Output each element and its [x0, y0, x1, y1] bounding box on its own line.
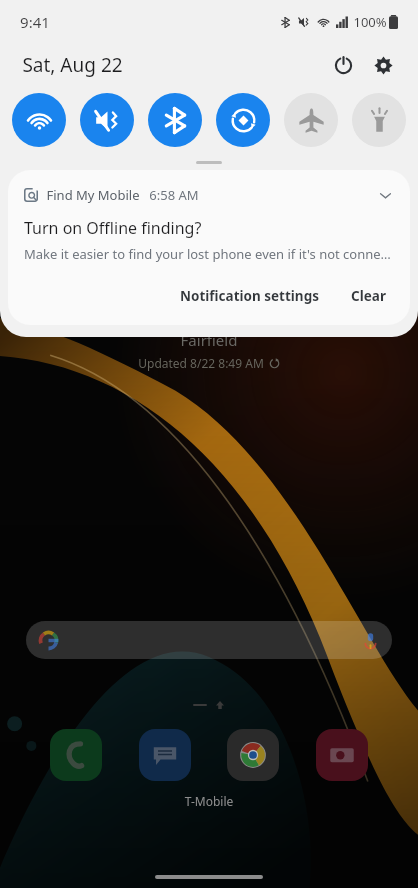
button[interactable]: App	[139, 729, 191, 781]
button[interactable]	[26, 621, 392, 659]
staticText: 100%	[353, 13, 387, 31]
staticText: Notification settings	[180, 287, 319, 305]
staticText: Sat, Aug 22	[22, 52, 123, 78]
staticText: 6:58 AM	[149, 186, 199, 204]
button[interactable]: Bluetooth	[148, 93, 202, 147]
staticText: 9:41	[20, 12, 50, 32]
button[interactable]: Settings	[366, 48, 400, 82]
button[interactable]: Flashlight	[352, 93, 406, 147]
button[interactable]: Power	[326, 48, 360, 82]
staticText: T-Mobile	[0, 793, 418, 809]
button[interactable]: Clear	[345, 283, 392, 309]
staticText: Make it easier to find your lost phone e…	[24, 245, 394, 263]
staticText: Updated 8/22 8:49 AM	[138, 355, 264, 371]
button[interactable]: Wi-Fi	[12, 93, 66, 147]
staticText: Find My Mobile	[46, 186, 140, 204]
button[interactable]: App	[316, 729, 368, 781]
button[interactable]: App	[50, 729, 102, 781]
button[interactable]: Auto rotate	[216, 93, 270, 147]
button[interactable]: Find My Mobile	[8, 170, 410, 325]
staticText: Turn on Offline finding?	[24, 217, 202, 239]
staticText: Fairfield	[0, 330, 418, 350]
button[interactable]: Expand	[374, 184, 396, 206]
button[interactable]: Sound mode	[80, 93, 134, 147]
staticText: Clear	[351, 287, 386, 305]
button[interactable]: Notification settings	[174, 283, 325, 309]
button[interactable]: Airplane mode	[284, 93, 338, 147]
button[interactable]: App	[227, 729, 279, 781]
